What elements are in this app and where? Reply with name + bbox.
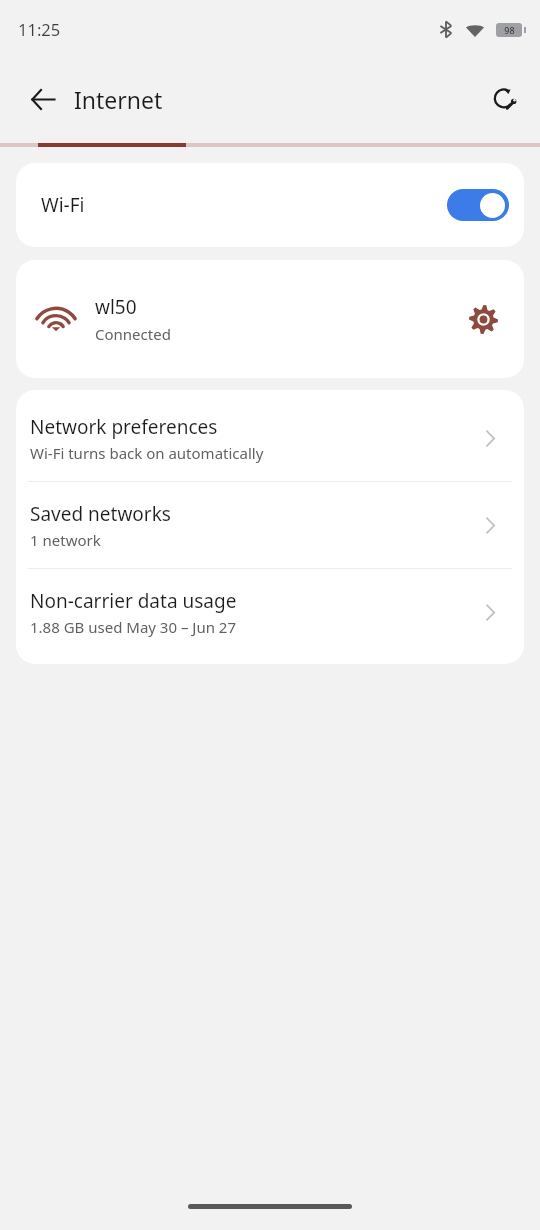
staticText: Internet [74, 84, 163, 115]
staticText: 1 network [30, 530, 101, 550]
staticText: Non-carrier data usage [30, 588, 237, 614]
staticText: Saved networks [30, 501, 171, 527]
staticText: Network preferences [30, 414, 218, 440]
button[interactable]: Fix connectivity [480, 75, 528, 123]
button[interactable]: Wi-Fi on [447, 189, 509, 221]
button[interactable]: Back [19, 75, 67, 123]
button[interactable]: wl50 [16, 260, 524, 378]
button[interactable]: Network preferences [16, 395, 524, 481]
staticText: Connected [95, 324, 171, 344]
staticText: wl50 [95, 294, 137, 320]
button[interactable]: Network settings [460, 296, 506, 342]
button[interactable]: Saved networks [16, 482, 524, 568]
staticText: Wi-Fi [41, 192, 85, 218]
staticText: 98 [504, 24, 515, 36]
staticText: 11:25 [18, 18, 61, 40]
staticText: Wi-Fi turns back on automatically [30, 443, 264, 463]
staticText: 1.88 GB used May 30 – Jun 27 [30, 617, 236, 637]
button[interactable]: Non-carrier data usage [16, 569, 524, 655]
button[interactable]: Wi-Fi [16, 163, 524, 247]
